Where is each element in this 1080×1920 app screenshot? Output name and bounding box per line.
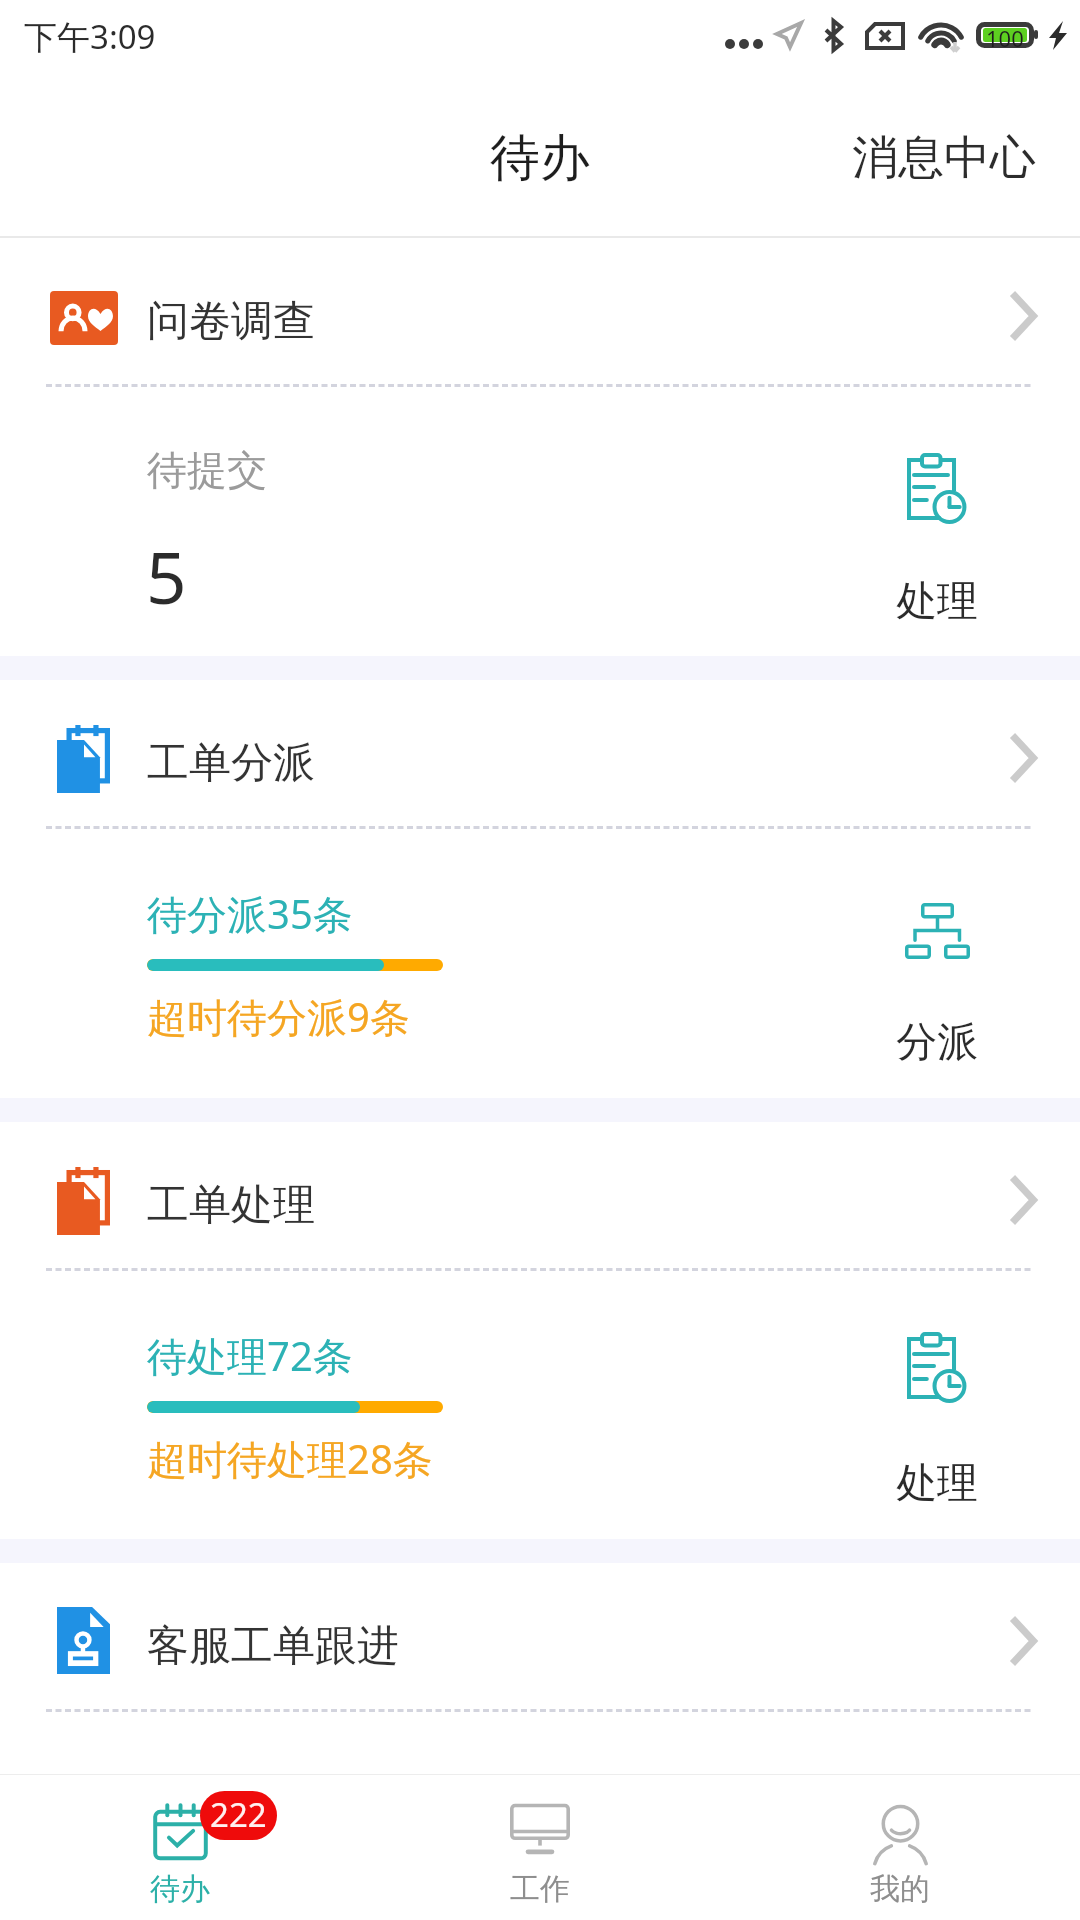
staticText: 工单分派 [147, 737, 315, 790]
staticText: 待办 [490, 127, 590, 190]
other: 查看问卷调查 [1009, 290, 1037, 342]
staticText: 待处理72条 [147, 1328, 353, 1383]
staticText: 222 [210, 1792, 267, 1837]
button[interactable]: 问卷调查 [0, 238, 1080, 384]
other: 查看工单处理 [1009, 1174, 1037, 1226]
button[interactable]: 客服工单跟进 [0, 1563, 1080, 1709]
staticText: 超时待分派9条 [147, 989, 410, 1044]
staticText: 消息中心 [852, 129, 1036, 187]
staticText: 5 [146, 528, 187, 625]
button[interactable]: 工单处理 [0, 1122, 1080, 1268]
other: 查看工单分派 [1009, 732, 1037, 784]
button[interactable]: 处理 [857, 1271, 1017, 1510]
staticText: 我的 [870, 1870, 930, 1908]
button[interactable]: 我的 [720, 1775, 1080, 1920]
staticText: 下午3:09 [24, 14, 156, 59]
staticText: 问卷调查 [147, 295, 315, 348]
button[interactable]: 工作 [360, 1775, 720, 1920]
button[interactable]: 分派 [857, 829, 1017, 1069]
staticText: 待分派35条 [147, 886, 353, 941]
button[interactable]: 处理 [857, 387, 1017, 628]
staticText: 工作 [510, 1870, 570, 1908]
button[interactable]: 工单分派 [0, 680, 1080, 826]
staticText: 超时待处理28条 [147, 1431, 433, 1486]
staticText: 客服工单跟进 [147, 1620, 399, 1673]
staticText: 工单处理 [147, 1179, 315, 1232]
staticText: 处理 [896, 576, 978, 628]
other: 查看客服工单跟进 [1009, 1615, 1037, 1667]
staticText: 待提交 [147, 445, 267, 495]
staticText: 处理 [896, 1458, 978, 1510]
button[interactable]: 消息中心 [808, 103, 1080, 213]
button[interactable]: 待办 [0, 1775, 360, 1920]
staticText: 100 [986, 23, 1024, 53]
staticText: 待办 [150, 1870, 210, 1908]
staticText: 分派 [896, 1017, 978, 1069]
